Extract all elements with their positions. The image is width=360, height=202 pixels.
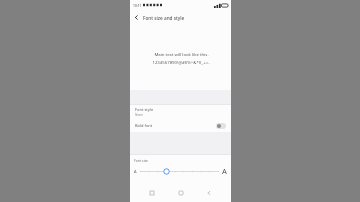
button[interactable]: Bold font: [130, 119, 231, 132]
staticText: Bold font: [135, 123, 153, 128]
button[interactable]: Bold font: [216, 123, 226, 129]
button[interactable]: Back: [202, 186, 216, 200]
staticText: 1234567890!@#$%^&*()_+=-: [152, 59, 210, 65]
staticText: Font size: [134, 158, 149, 163]
button[interactable]: Font size slider: [134, 165, 227, 177]
staticText: Main text will look like this.: [154, 51, 209, 57]
button[interactable]: Home: [174, 186, 188, 200]
button[interactable]: Font style: [130, 105, 231, 119]
staticText: 10:11: [133, 3, 142, 7]
staticText: Font size and style: [143, 15, 185, 21]
staticText: A: [134, 169, 137, 174]
button[interactable]: Navigate up: [130, 11, 143, 24]
staticText: None: [135, 113, 144, 117]
staticText: Font style: [135, 107, 154, 112]
button[interactable]: Recent apps: [145, 186, 159, 200]
staticText: A: [222, 166, 227, 176]
